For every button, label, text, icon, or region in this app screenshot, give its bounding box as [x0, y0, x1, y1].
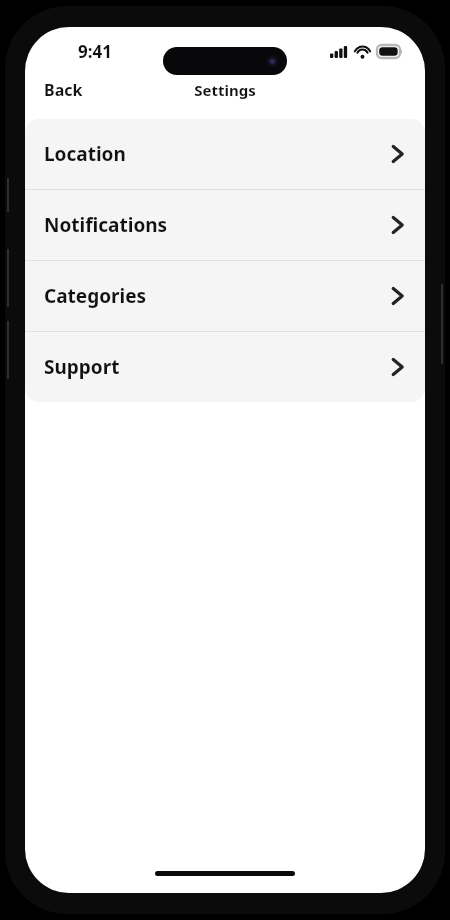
staticText: Location — [44, 141, 126, 167]
staticText: Notifications — [44, 212, 168, 238]
other: Open Location — [391, 143, 405, 165]
other: Open Support — [391, 356, 405, 378]
button[interactable]: Categories — [25, 261, 425, 331]
other: Open Notifications — [391, 214, 405, 236]
button[interactable]: Location — [25, 119, 425, 189]
staticText: Settings — [194, 80, 256, 100]
button[interactable]: Notifications — [25, 190, 425, 260]
staticText: Back — [44, 79, 83, 101]
button[interactable]: Support — [25, 332, 425, 402]
staticText: 9:41 — [78, 40, 112, 63]
other: Open Categories — [391, 285, 405, 307]
staticText: Categories — [44, 283, 147, 309]
button[interactable]: Back — [25, 75, 102, 105]
staticText: Support — [44, 354, 120, 380]
